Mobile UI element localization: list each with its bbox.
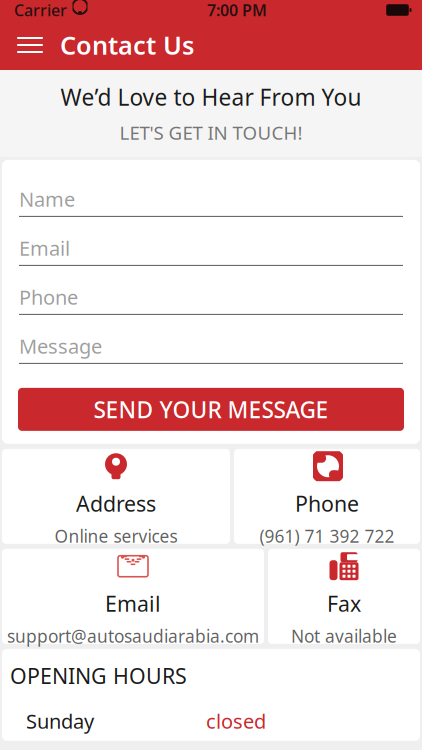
staticText: Name: [19, 186, 75, 212]
button[interactable]: Fax: [268, 549, 420, 644]
staticText: Phone: [19, 284, 78, 310]
button[interactable]: Email: [2, 549, 264, 644]
staticText: 7:00 PM: [207, 0, 267, 21]
staticText: Email: [19, 235, 70, 261]
staticText: Online services: [54, 524, 177, 547]
staticText: Sunday: [26, 708, 94, 734]
staticText: Fax: [327, 589, 361, 617]
staticText: LET'S GET IN TOUCH!: [119, 120, 302, 145]
staticText: support@autosaudiarabia.com: [7, 624, 259, 647]
button[interactable]: Menu: [8, 23, 52, 67]
staticText: closed: [206, 708, 266, 734]
button[interactable]: Name: [19, 182, 403, 217]
staticText: Address: [76, 489, 156, 517]
staticText: We’d Love to Hear From You: [60, 82, 361, 112]
button[interactable]: SEND YOUR MESSAGE: [18, 388, 404, 431]
staticText: Email: [105, 589, 161, 617]
button[interactable]: Phone: [234, 449, 420, 544]
staticText: Message: [19, 333, 102, 359]
button[interactable]: Phone: [19, 280, 403, 315]
staticText: Contact Us: [60, 28, 194, 62]
staticText: Carrier: [14, 0, 67, 21]
button[interactable]: Contact Us: [52, 18, 194, 72]
staticText: Not available: [291, 624, 397, 647]
button[interactable]: Address: [2, 449, 230, 544]
button[interactable]: Email: [19, 231, 403, 266]
staticText: (961) 71 392 722: [259, 524, 394, 547]
button[interactable]: Message: [19, 329, 403, 364]
staticText: OPENING HOURS: [10, 661, 187, 690]
staticText: SEND YOUR MESSAGE: [93, 394, 328, 424]
staticText: Phone: [295, 489, 359, 517]
